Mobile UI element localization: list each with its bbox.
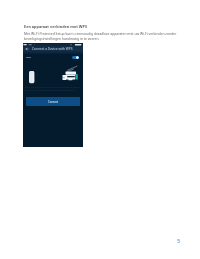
staticText: Met Wi-Fi Protected Setup kunt u eenvoud…: [24, 31, 177, 36]
staticText: and then tap the button below within two…: [25, 89, 75, 92]
staticText: beveiligingsinstellingen handmatig in te…: [24, 36, 100, 41]
staticText: WPS: [26, 56, 31, 59]
staticText: Connect: [48, 100, 59, 104]
button[interactable]: [23, 55, 83, 61]
button[interactable]: Connect: [26, 97, 80, 106]
staticText: 5: [177, 237, 181, 245]
staticText: Een apparaat verbinden met WPS: [24, 24, 87, 29]
staticText: Press the WPS button on the device you w…: [25, 86, 81, 89]
button[interactable]: Back: [25, 47, 28, 51]
staticText: Connect a Device with WPS: [32, 47, 73, 51]
